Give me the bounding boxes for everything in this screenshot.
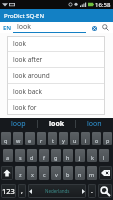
staticText: n — [78, 171, 82, 178]
staticText: EN — [3, 24, 12, 32]
button[interactable]: s — [15, 149, 25, 162]
staticText: h — [66, 154, 70, 161]
button[interactable]: f — [39, 149, 49, 162]
staticText: loop — [11, 119, 26, 129]
staticText: m — [89, 171, 95, 178]
button[interactable]: a — [3, 149, 13, 162]
staticText: 123 — [2, 186, 15, 196]
button[interactable]: n — [75, 166, 85, 180]
staticText: z — [19, 171, 22, 178]
staticText: j — [79, 154, 81, 161]
button[interactable]: look around — [7, 68, 105, 83]
button[interactable]: z — [15, 166, 25, 180]
button[interactable]: i — [81, 132, 90, 145]
button[interactable]: v — [51, 166, 61, 180]
button[interactable]: Search — [100, 22, 111, 33]
button[interactable]: l — [99, 149, 109, 162]
staticText: l — [103, 154, 105, 161]
staticText: o — [95, 137, 99, 144]
staticText: look — [13, 39, 27, 48]
staticText: . — [91, 186, 93, 196]
staticText: q — [4, 137, 8, 144]
button[interactable]: u — [70, 132, 79, 145]
button[interactable]: b — [63, 166, 73, 180]
staticText: , — [21, 186, 23, 196]
staticText: w — [16, 137, 21, 144]
button[interactable]: q — [1, 132, 11, 145]
staticText: loon — [87, 119, 102, 129]
staticText: u — [73, 137, 77, 144]
staticText: t — [52, 137, 54, 144]
button[interactable]: e — [25, 132, 35, 145]
staticText: 16:58 — [95, 1, 111, 9]
staticText: p — [106, 137, 110, 144]
button[interactable]: loop — [0, 118, 37, 130]
button[interactable]: Comma — [18, 184, 26, 198]
staticText: k — [91, 154, 94, 161]
staticText: Nederlands — [45, 188, 70, 194]
staticText: s — [19, 154, 22, 161]
button[interactable]: c — [39, 166, 49, 180]
staticText: look back — [13, 87, 42, 96]
staticText: d — [30, 154, 34, 161]
staticText: r — [40, 137, 43, 144]
button[interactable]: look after — [7, 52, 105, 67]
button[interactable]: look back — [7, 84, 105, 99]
button[interactable]: r — [37, 132, 46, 145]
button[interactable]: t — [48, 132, 57, 145]
button[interactable]: Search — [98, 184, 112, 198]
button[interactable]: d — [27, 149, 37, 162]
staticText: look after — [13, 55, 43, 64]
button[interactable]: Numbers — [1, 184, 16, 198]
button[interactable]: Backspace — [99, 166, 112, 180]
button[interactable]: look — [7, 36, 105, 51]
staticText: f — [43, 154, 45, 161]
staticText: y — [62, 137, 65, 144]
staticText: x — [31, 171, 34, 178]
staticText: ProDict SQ-EN — [4, 12, 44, 20]
staticText: e — [28, 137, 32, 144]
staticText: a — [6, 154, 10, 161]
button[interactable]: p — [103, 132, 112, 145]
staticText: b — [66, 171, 70, 178]
button[interactable]: Clear — [89, 23, 99, 33]
button[interactable]: o — [92, 132, 101, 145]
staticText: c — [43, 171, 46, 178]
button[interactable]: Shift — [1, 166, 13, 180]
button[interactable]: y — [59, 132, 68, 145]
button[interactable]: look — [38, 118, 75, 130]
staticText: v — [55, 171, 58, 178]
button[interactable]: x — [27, 166, 37, 180]
button[interactable]: h — [63, 149, 73, 162]
button[interactable]: look for — [7, 100, 105, 115]
staticText: look for — [13, 103, 37, 112]
staticText: i — [85, 137, 87, 144]
staticText: look — [17, 22, 32, 32]
button[interactable]: k — [87, 149, 97, 162]
staticText: g — [54, 154, 58, 161]
button[interactable]: Space — [28, 184, 86, 198]
button[interactable]: Period — [88, 184, 96, 198]
staticText: look around — [13, 71, 50, 80]
button[interactable]: loon — [76, 118, 113, 130]
staticText: look — [49, 119, 65, 129]
button[interactable]: g — [51, 149, 61, 162]
button[interactable]: w — [13, 132, 23, 145]
button[interactable]: m — [87, 166, 97, 180]
button[interactable]: j — [75, 149, 85, 162]
